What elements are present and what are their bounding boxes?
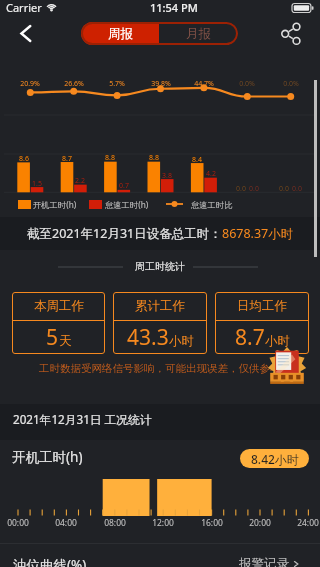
staticText: 0.0%: [283, 79, 299, 89]
staticText: 20.9%: [20, 79, 40, 89]
button[interactable]: 8.42小时: [240, 449, 309, 468]
button[interactable]: Share: [276, 21, 306, 51]
staticText: 20:00: [249, 517, 271, 529]
button[interactable]: 本周工作: [12, 292, 105, 354]
staticText: 8.4: [192, 155, 202, 165]
staticText: 08:00: [104, 517, 126, 529]
staticText: 11:54 PM: [150, 0, 198, 15]
staticText: 周报: [108, 26, 133, 42]
staticText: 报警记录: [239, 556, 289, 567]
button[interactable]: 周报: [81, 22, 159, 45]
staticText: 2021年12月31日 工况统计: [13, 411, 152, 427]
staticText: 0.7: [119, 181, 129, 191]
staticText: 开机工时(h): [33, 199, 77, 210]
staticText: 0.0: [292, 184, 302, 194]
staticText: 24:00: [297, 517, 319, 529]
staticText: 8.8: [105, 153, 115, 163]
staticText: 44.7%: [194, 79, 214, 89]
staticText: 26.6%: [64, 79, 84, 89]
staticText: 日均工作: [237, 298, 287, 314]
staticText: 5.7%: [109, 79, 125, 89]
button[interactable]: Report certificate: [266, 347, 308, 388]
staticText: 截至2021年12月31日设备总工时：: [27, 225, 222, 242]
staticText: 0.0%: [239, 79, 255, 89]
staticText: 小时: [265, 333, 290, 349]
staticText: 8.7: [235, 323, 265, 352]
staticText: 怠速工时比: [191, 200, 233, 210]
staticText: 8.6: [19, 154, 29, 164]
staticText: 小时: [169, 333, 194, 349]
staticText: 工时数据受网络信号影响，可能出现误差，仅供参考: [39, 362, 281, 375]
button[interactable]: 日均工作: [215, 292, 309, 354]
staticText: 39.8%: [151, 79, 171, 89]
button[interactable]: Back: [6, 22, 36, 52]
staticText: 3.8: [162, 171, 172, 181]
staticText: 00:00: [7, 517, 29, 529]
staticText: 周工时统计: [135, 260, 185, 273]
staticText: 怠速工时(h): [105, 199, 149, 210]
staticText: 04:00: [55, 517, 77, 529]
button[interactable]: 累计工作: [113, 292, 207, 354]
staticText: 0.0: [279, 184, 289, 194]
staticText: 0.0: [249, 184, 259, 194]
staticText: 8678.37小时: [222, 225, 294, 242]
button[interactable]: 报警记录: [239, 556, 300, 567]
staticText: 5: [46, 323, 59, 352]
button[interactable]: 月报: [159, 22, 238, 45]
staticText: 4.2: [206, 169, 216, 179]
staticText: 1.5: [32, 179, 42, 189]
staticText: 8.8: [149, 153, 159, 163]
staticText: 本周工作: [34, 298, 84, 314]
staticText: Carrier: [6, 0, 42, 15]
staticText: 8.42小时: [251, 451, 299, 467]
staticText: 天: [59, 333, 72, 349]
staticText: 16:00: [201, 517, 223, 529]
staticText: 2.2: [75, 176, 85, 186]
staticText: 月报: [186, 26, 211, 42]
staticText: 0.0: [236, 184, 246, 194]
staticText: 12:00: [152, 517, 174, 529]
staticText: 累计工作: [135, 298, 185, 314]
staticText: 8.7: [62, 154, 72, 164]
staticText: 油位曲线(%): [13, 556, 87, 567]
staticText: 开机工时(h): [12, 448, 83, 466]
staticText: 43.3: [127, 323, 169, 352]
